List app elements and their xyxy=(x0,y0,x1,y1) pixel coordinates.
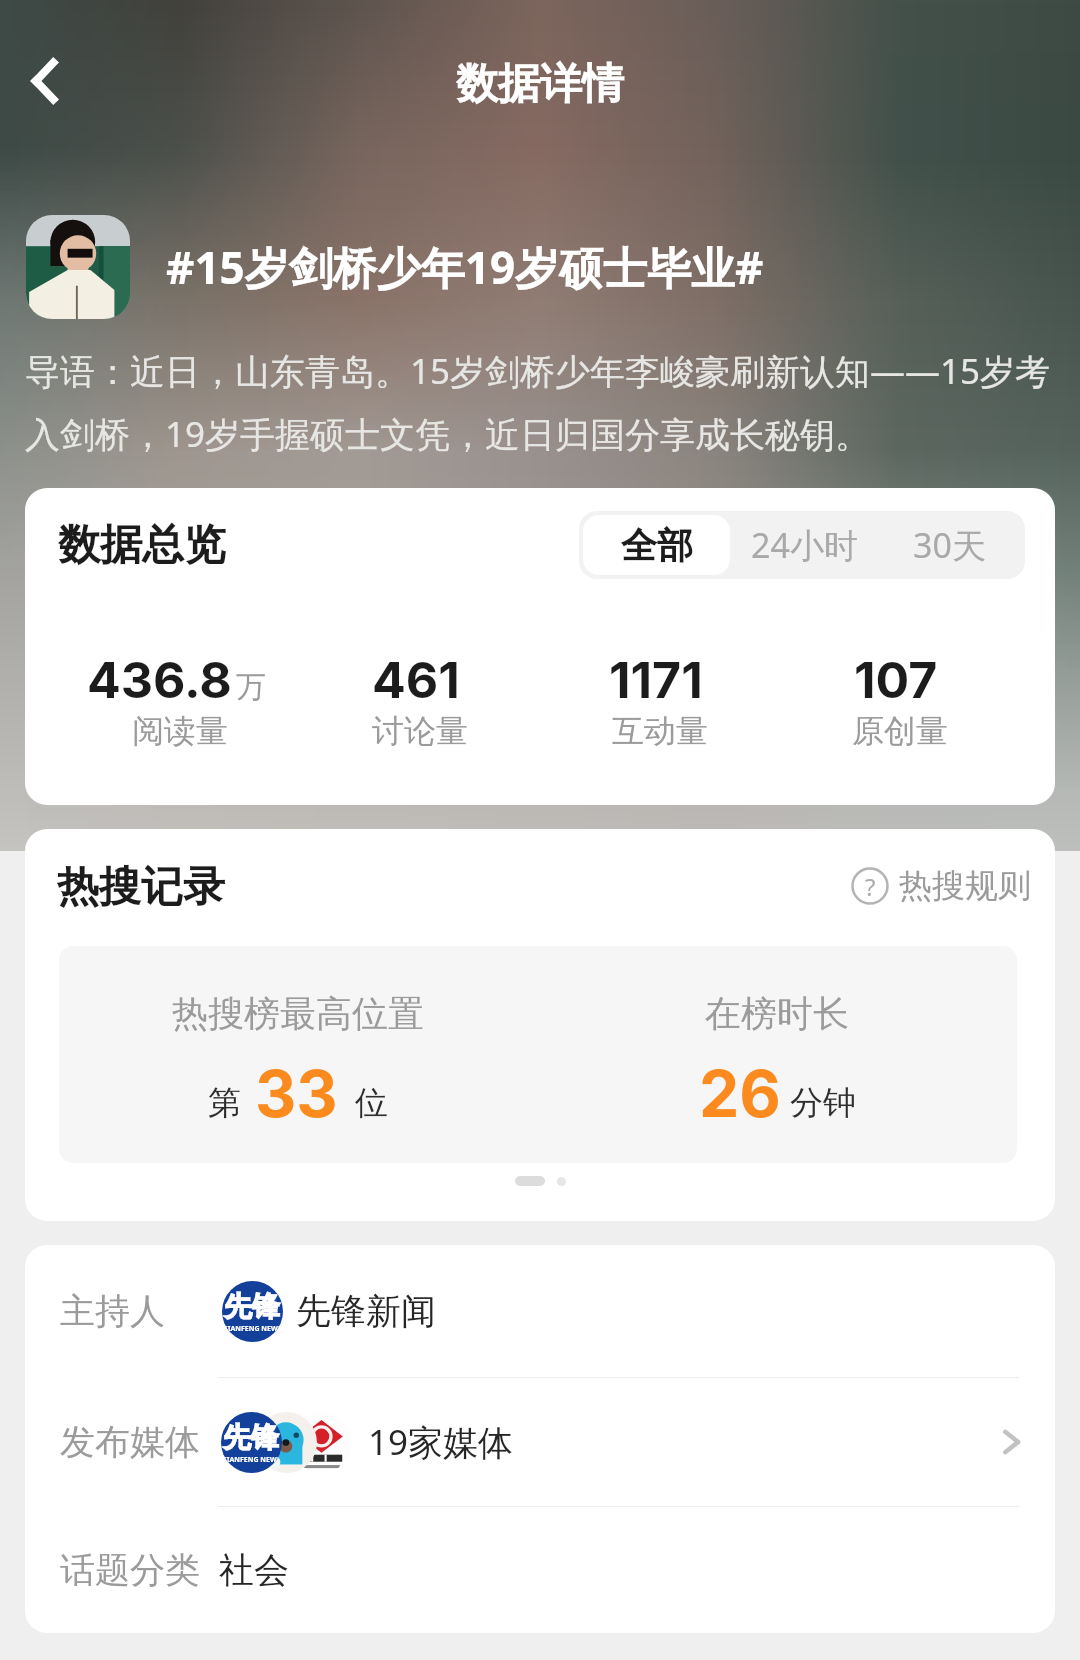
staticText: 位 xyxy=(355,1082,388,1124)
staticText: 主持人 xyxy=(60,1289,165,1333)
button[interactable]: 全部 xyxy=(583,515,730,575)
staticText: 发布媒体 xyxy=(60,1420,200,1464)
staticText: 全部 xyxy=(621,523,693,568)
staticText: 数据总览 xyxy=(58,519,226,572)
button[interactable]: 发布媒体 xyxy=(25,1378,1055,1506)
staticText: 30天 xyxy=(913,522,986,568)
button[interactable]: 30天 xyxy=(874,511,1025,579)
staticText: #15岁剑桥少年19岁硕士毕业# xyxy=(166,237,764,297)
staticText: 原创量 xyxy=(852,711,948,751)
staticText: 107 xyxy=(854,650,938,710)
staticText: 436.8 xyxy=(87,650,232,710)
staticText: ? xyxy=(865,870,876,903)
other: More xyxy=(995,1425,1029,1459)
staticText: 热搜记录 xyxy=(57,861,225,914)
staticText: 分钟 xyxy=(790,1082,856,1124)
staticText: 24小时 xyxy=(751,522,858,568)
staticText: 话题分类 xyxy=(60,1548,200,1592)
button[interactable]: 话题分类 xyxy=(25,1507,1055,1633)
staticText: 热搜规则 xyxy=(899,865,1031,907)
button[interactable]: 主持人 xyxy=(25,1245,1055,1377)
button[interactable]: 24小时 xyxy=(734,511,874,579)
staticText: 导语：近日，山东青岛。15岁剑桥少年李峻豪刷新认知——15岁考入剑桥，19岁手握… xyxy=(25,347,1072,457)
staticText: 19家媒体 xyxy=(368,1418,514,1466)
staticText: 讨论量 xyxy=(372,711,468,751)
staticText: 互动量 xyxy=(612,711,708,751)
staticText: 26 xyxy=(699,1055,781,1132)
staticText: 先锋 xyxy=(224,1289,281,1324)
staticText: 热搜榜最高位置 xyxy=(172,991,424,1036)
staticText: 万 xyxy=(236,668,266,706)
staticText: 社会 xyxy=(219,1548,289,1592)
button[interactable]: ? xyxy=(851,865,1031,907)
button[interactable]: Back xyxy=(10,45,82,117)
staticText: XIANFENG NEWS xyxy=(223,1324,282,1334)
staticText: 先锋新闻 xyxy=(296,1289,436,1333)
staticText: 在榜时长 xyxy=(705,991,849,1036)
staticText: 数据详情 xyxy=(456,58,624,111)
staticText: 先锋 xyxy=(223,1420,280,1455)
staticText: 33 xyxy=(255,1055,338,1132)
staticText: 阅读量 xyxy=(132,711,228,751)
staticText: 461 xyxy=(372,650,460,710)
staticText: 1171 xyxy=(609,650,703,710)
staticText: XIANFENG NEWS xyxy=(222,1455,281,1465)
staticText: 第 xyxy=(208,1082,241,1124)
